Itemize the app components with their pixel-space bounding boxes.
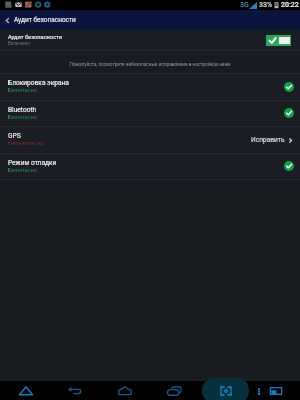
- button[interactable]: Исправить: [251, 136, 294, 144]
- staticText: 3G: [240, 1, 249, 9]
- staticText: Блокировка экрана: [8, 79, 69, 87]
- button[interactable]: Up: [17, 381, 35, 400]
- button[interactable]: Режим отладки: [0, 154, 300, 178]
- button[interactable]: Bluetooth: [0, 101, 300, 125]
- button[interactable]: Аудит безопасности: [0, 10, 300, 30]
- staticText: Bluetooth: [8, 106, 37, 114]
- button[interactable]: Блокировка экрана: [0, 74, 300, 99]
- button[interactable]: [266, 35, 291, 46]
- staticText: Исправить: [251, 136, 285, 144]
- button[interactable]: Home: [116, 381, 134, 400]
- staticText: GPS: [8, 132, 21, 140]
- button[interactable]: Menu: [250, 381, 268, 400]
- staticText: Небезопасно: [8, 140, 44, 147]
- staticText: Включено: [8, 41, 30, 46]
- staticText: Аудит безопасности: [14, 16, 76, 24]
- staticText: 33%: [259, 1, 273, 9]
- staticText: Безопасно: [8, 114, 38, 121]
- staticText: 20:22: [281, 1, 299, 9]
- button[interactable]: Аудит безопасности: [0, 30, 300, 50]
- button[interactable]: Recents: [165, 381, 183, 400]
- staticText: Режим отладки: [8, 159, 57, 167]
- staticText: Пожалуйста, посмотрите небезопасные испр…: [69, 62, 231, 68]
- staticText: Безопасно: [8, 167, 38, 174]
- button[interactable]: Multi window: [267, 381, 285, 400]
- button[interactable]: GPS: [0, 127, 300, 152]
- staticText: Безопасно: [8, 87, 38, 94]
- staticText: Аудит безопасности: [8, 34, 63, 41]
- button[interactable]: Screenshot: [217, 381, 235, 400]
- button[interactable]: Back: [66, 381, 84, 400]
